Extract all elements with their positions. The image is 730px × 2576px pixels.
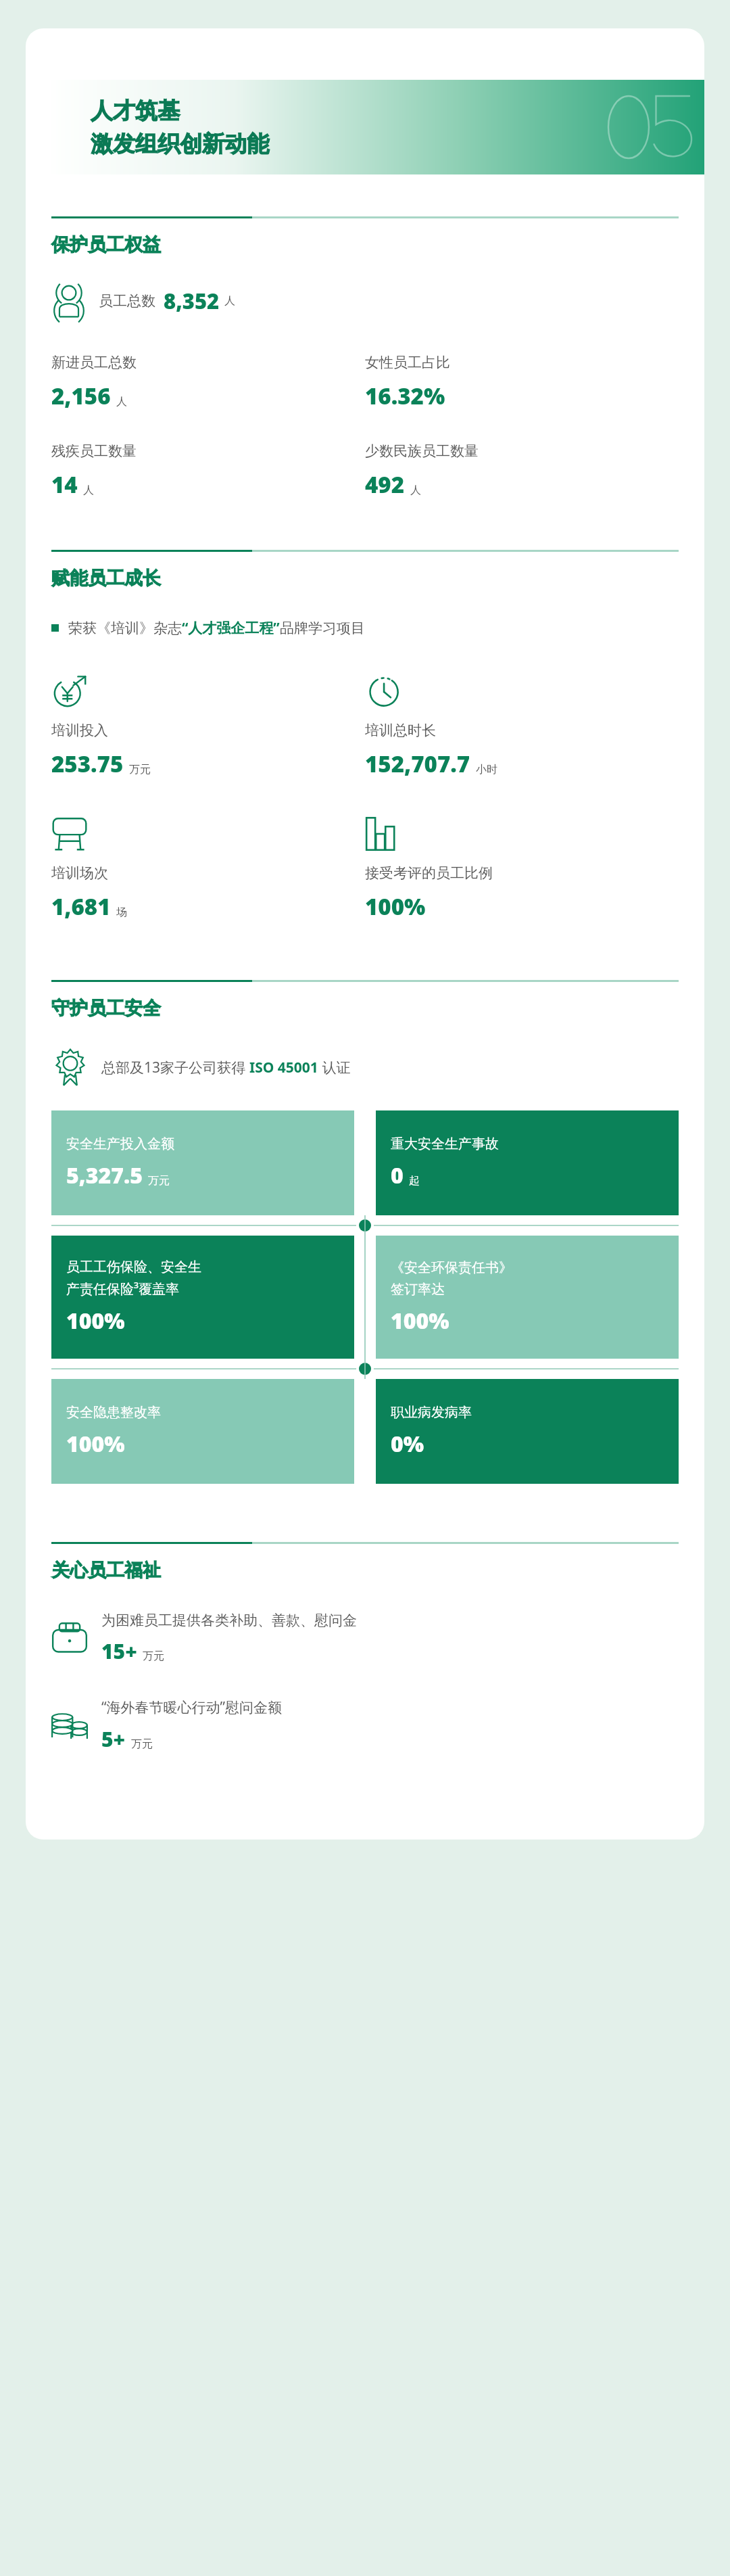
staticText: 《安全环保责任书》 签订率达 xyxy=(391,1259,512,1298)
staticText: 女性员工占比 xyxy=(365,354,450,371)
staticText: 残疾员工数量 xyxy=(51,442,137,460)
staticText: 重大安全生产事故 xyxy=(391,1135,499,1152)
staticText: 100% xyxy=(66,1429,125,1459)
staticText: 职业病发病率 xyxy=(391,1404,472,1421)
staticText: 少数民族员工数量 xyxy=(365,442,479,460)
staticText: 152,707.7 xyxy=(365,749,470,779)
staticText: 员工总数 xyxy=(99,292,155,310)
button[interactable]: 新进员工总数 xyxy=(51,354,365,411)
staticText: 0% xyxy=(391,1429,424,1459)
staticText: 1,681 xyxy=(51,891,111,922)
staticText: 场 xyxy=(116,906,127,919)
staticText: 万元 xyxy=(129,763,151,776)
staticText: 万元 xyxy=(148,1174,170,1188)
button[interactable]: 荣获《培训》杂志 xyxy=(51,618,679,638)
staticText: 新进员工总数 xyxy=(51,354,137,371)
staticText: 总部及13家子公司获得 xyxy=(101,1058,249,1077)
staticText: “人才强企工程” xyxy=(182,618,280,638)
button[interactable]: 为困难员工提供各类补助、善款、慰问金 xyxy=(51,1612,679,1665)
button[interactable]: 培训投入 xyxy=(51,673,365,779)
staticText: 接受考评的员工比例 xyxy=(365,864,493,882)
button[interactable]: 女性员工占比 xyxy=(365,354,679,411)
staticText: 人 xyxy=(83,484,94,497)
button[interactable]: 员工工伤保险、安全生 产责任保险³覆盖率 xyxy=(51,1236,354,1359)
staticText: 100% xyxy=(365,891,426,922)
staticText: 关心员工福祉 xyxy=(51,1559,161,1582)
staticText: 5+ xyxy=(101,1725,126,1753)
button[interactable]: 残疾员工数量 xyxy=(51,442,365,500)
staticText: 2,156 xyxy=(51,381,111,411)
staticText: 万元 xyxy=(131,1737,153,1751)
staticText: 人 xyxy=(116,395,127,408)
button[interactable]: Employees xyxy=(51,283,679,319)
staticText: 认证 xyxy=(318,1058,351,1077)
button[interactable]: 安全生产投入金额 xyxy=(51,1110,354,1215)
staticText: 赋能员工成长 xyxy=(51,567,161,590)
staticText: “海外春节暖心行动”慰问金额 xyxy=(101,1697,283,1717)
button[interactable]: 少数民族员工数量 xyxy=(365,442,679,500)
staticText: 人 xyxy=(410,484,421,497)
staticText: 培训场次 xyxy=(51,864,108,882)
button[interactable]: 赋能员工成长 xyxy=(51,550,679,590)
staticText: 为困难员工提供各类补助、善款、慰问金 xyxy=(101,1612,357,1629)
staticText: 100% xyxy=(391,1306,449,1336)
staticText: 品牌学习项目 xyxy=(280,619,365,637)
staticText: 0 xyxy=(391,1161,404,1190)
staticText: 人 xyxy=(224,294,235,308)
staticText: 安全隐患整改率 xyxy=(66,1404,161,1421)
button[interactable]: 培训场次 xyxy=(51,816,365,922)
staticText: 激发组织创新动能 xyxy=(91,130,269,158)
button[interactable]: 守护员工安全 xyxy=(51,980,679,1020)
other: Employees xyxy=(51,283,87,319)
staticText: 15+ xyxy=(101,1637,137,1665)
button[interactable]: 关心员工福祉 xyxy=(51,1542,679,1582)
staticText: 100% xyxy=(66,1306,125,1336)
button[interactable]: 《安全环保责任书》 签订率达 xyxy=(376,1236,679,1359)
button[interactable]: 职业病发病率 xyxy=(376,1379,679,1484)
button[interactable]: 保护员工权益 xyxy=(51,216,679,256)
staticText: 培训总时长 xyxy=(365,722,436,739)
staticText: 起 xyxy=(409,1174,420,1188)
staticText: 守护员工安全 xyxy=(51,997,161,1020)
staticText: 人才筑基 xyxy=(91,97,180,125)
button[interactable]: ISO certification xyxy=(51,1048,679,1086)
button[interactable]: 安全隐患整改率 xyxy=(51,1379,354,1484)
other: ISO certification xyxy=(51,1048,89,1086)
staticText: 14 xyxy=(51,469,78,500)
staticText: 小时 xyxy=(476,763,497,776)
staticText: 员工工伤保险、安全生 产责任保险³覆盖率 xyxy=(66,1259,201,1298)
staticText: 8,352 xyxy=(164,287,220,315)
staticText: 万元 xyxy=(143,1649,164,1663)
button[interactable]: 接受考评的员工比例 xyxy=(365,816,679,922)
staticText: 5,327.5 xyxy=(66,1161,143,1190)
staticText: 荣获《培训》杂志 xyxy=(68,619,182,637)
staticText: 培训投入 xyxy=(51,722,108,739)
button[interactable]: 培训总时长 xyxy=(365,673,679,779)
staticText: 安全生产投入金额 xyxy=(66,1135,174,1152)
staticText: 16.32% xyxy=(365,381,445,411)
staticText: 492 xyxy=(365,469,405,500)
staticText: 253.75 xyxy=(51,749,124,779)
staticText: 保护员工权益 xyxy=(51,233,161,256)
staticText: ISO 45001 xyxy=(249,1058,318,1077)
button[interactable]: 重大安全生产事故 xyxy=(376,1110,679,1215)
button[interactable]: “海外春节暖心行动”慰问金额 xyxy=(51,1697,679,1753)
